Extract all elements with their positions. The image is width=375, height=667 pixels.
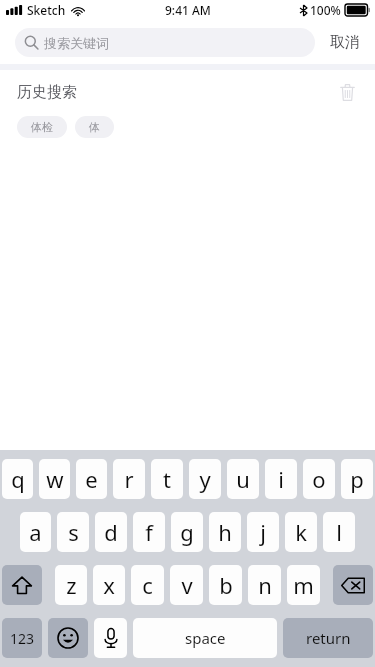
staticText: d — [104, 517, 118, 547]
button[interactable]: o — [303, 459, 335, 499]
button[interactable]: y — [189, 459, 221, 499]
button[interactable]: q — [2, 459, 33, 499]
button[interactable]: 搜索关键词 — [15, 28, 315, 57]
button[interactable]: Backspace — [333, 565, 373, 605]
button[interactable]: n — [248, 565, 281, 605]
button[interactable]: k — [285, 512, 317, 552]
staticText: o — [312, 464, 326, 494]
staticText: q — [11, 464, 25, 494]
staticText: r — [124, 464, 134, 494]
button[interactable]: h — [209, 512, 241, 552]
button[interactable]: d — [95, 512, 127, 552]
staticText: n — [258, 570, 272, 600]
staticText: t — [163, 464, 171, 494]
button[interactable]: v — [170, 565, 203, 605]
staticText: 9:41 AM — [165, 2, 211, 18]
staticText: u — [236, 464, 250, 494]
staticText: 体 — [89, 120, 100, 134]
staticText: Sketch — [27, 2, 66, 18]
staticText: 搜索关键词 — [44, 35, 109, 51]
staticText: g — [180, 517, 194, 547]
staticText: h — [218, 517, 232, 547]
button[interactable]: Dictation — [94, 618, 127, 658]
staticText: y — [199, 464, 211, 494]
button[interactable]: m — [287, 565, 320, 605]
button[interactable]: i — [265, 459, 297, 499]
staticText: p — [350, 464, 364, 494]
button[interactable]: 取消 — [315, 20, 375, 64]
button[interactable]: space — [133, 618, 277, 658]
staticText: 体检 — [31, 120, 53, 134]
button[interactable]: t — [151, 459, 183, 499]
button[interactable]: b — [209, 565, 242, 605]
button[interactable]: u — [227, 459, 259, 499]
staticText: j — [260, 517, 266, 547]
button[interactable]: x — [93, 565, 125, 605]
button[interactable]: p — [341, 459, 373, 499]
button[interactable]: f — [133, 512, 165, 552]
button[interactable]: j — [247, 512, 279, 552]
staticText: 100% — [310, 2, 341, 18]
staticText: s — [68, 517, 79, 547]
staticText: b — [219, 570, 233, 600]
staticText: f — [145, 517, 153, 547]
staticText: w — [46, 464, 64, 494]
button[interactable]: g — [171, 512, 203, 552]
button[interactable]: z — [55, 565, 87, 605]
button[interactable]: 体 — [75, 116, 114, 138]
staticText: m — [293, 570, 314, 600]
button[interactable]: l — [323, 512, 355, 552]
button[interactable]: 123 — [2, 618, 42, 658]
button[interactable]: 清除历史搜索 — [334, 79, 360, 105]
button[interactable]: c — [131, 565, 164, 605]
staticText: return — [306, 628, 351, 648]
button[interactable]: w — [39, 459, 70, 499]
staticText: 历史搜索 — [17, 83, 77, 102]
staticText: 123 — [10, 629, 35, 648]
staticText: l — [336, 517, 342, 547]
button[interactable]: Shift — [2, 565, 42, 605]
staticText: x — [103, 570, 115, 600]
button[interactable]: 体检 — [17, 116, 67, 138]
staticText: z — [66, 570, 77, 600]
staticText: e — [85, 464, 98, 494]
staticText: c — [142, 570, 153, 600]
button[interactable]: return — [283, 618, 373, 658]
button[interactable]: a — [20, 512, 51, 552]
button[interactable]: s — [57, 512, 89, 552]
button[interactable]: r — [113, 459, 145, 499]
staticText: i — [278, 464, 284, 494]
staticText: 取消 — [330, 33, 360, 52]
staticText: v — [181, 570, 193, 600]
button[interactable]: e — [76, 459, 107, 499]
staticText: k — [295, 517, 307, 547]
staticText: space — [185, 628, 226, 648]
staticText: a — [29, 517, 42, 547]
button[interactable]: Emoji — [48, 618, 88, 658]
